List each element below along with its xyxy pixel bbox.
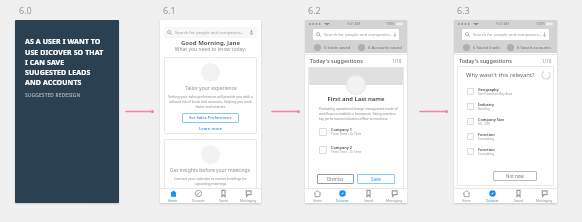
button[interactable]: Company Size xyxy=(467,114,544,129)
staticText: Discover xyxy=(486,199,499,203)
staticText: 6 Accounts saved xyxy=(368,45,402,51)
staticText: Messaging xyxy=(386,199,403,203)
button[interactable]: Geography xyxy=(467,84,544,99)
button[interactable]: Messaging xyxy=(236,189,261,203)
button[interactable]: Dismiss xyxy=(317,174,354,184)
button[interactable]: Function xyxy=(467,144,544,159)
staticText: Function xyxy=(478,147,495,152)
staticText: 9:41 AM xyxy=(496,21,510,26)
button[interactable]: Connect calendar xyxy=(182,190,239,200)
button[interactable]: Search xyxy=(164,27,257,38)
button[interactable]: Learn more xyxy=(199,126,223,132)
staticText: Get insights before your meetings xyxy=(170,167,251,174)
button[interactable]: Set Sales Preferences xyxy=(182,113,239,123)
staticText: 6 Saved leads xyxy=(473,45,500,51)
button[interactable]: Home xyxy=(454,189,479,203)
staticText: 6.3 xyxy=(457,4,470,16)
staticText: 1/10 xyxy=(542,58,552,64)
button[interactable]: Discover xyxy=(479,189,505,203)
staticText: Connect calendar xyxy=(193,192,228,198)
button[interactable]: Search xyxy=(313,29,399,40)
staticText: Setting your sales preferences will prov… xyxy=(164,94,257,109)
staticText: 1/10 xyxy=(392,58,402,64)
staticText: Saved xyxy=(514,199,523,203)
staticText: From Time - To Time xyxy=(331,132,362,136)
staticText: SUGGESTED REDESIGN xyxy=(25,92,81,99)
staticText: Company 2 xyxy=(331,145,352,150)
button[interactable]: Messaging xyxy=(381,189,407,203)
staticText: 100% xyxy=(536,21,545,26)
staticText: From Time - To Time xyxy=(331,150,362,154)
staticText: Consulting xyxy=(478,152,495,156)
staticText: Home xyxy=(168,199,178,203)
button[interactable]: Saved xyxy=(211,189,236,203)
staticText: Set Sales Preferences xyxy=(189,115,232,121)
staticText: 6 Saved accounts xyxy=(517,45,551,51)
button[interactable]: 6 Saved leads xyxy=(463,44,507,51)
staticText: Search for people and companies... xyxy=(473,32,543,38)
button[interactable]: 6 Accounts saved xyxy=(358,44,405,51)
button[interactable]: Messaging xyxy=(531,189,557,203)
staticText: Saved xyxy=(364,199,373,203)
button[interactable]: Saved xyxy=(505,189,531,203)
staticText: Company 1 xyxy=(331,127,352,132)
button[interactable]: 6 Saved accounts xyxy=(507,44,555,51)
staticText: 6.0 xyxy=(19,4,32,16)
staticText: Home xyxy=(313,199,323,203)
staticText: Industry xyxy=(478,102,495,107)
staticText: Why wasn't this relevant? xyxy=(466,71,535,79)
button[interactable]: Not now xyxy=(493,171,537,181)
staticText: Good Morning, Jane xyxy=(160,39,261,47)
button[interactable]: 6 leads saved xyxy=(314,44,358,51)
staticText: Home xyxy=(462,199,472,203)
staticText: 6 leads saved xyxy=(324,45,351,51)
staticText: Today's suggestions xyxy=(310,57,363,64)
button[interactable]: Discover xyxy=(186,189,211,203)
staticText: Not now xyxy=(506,173,524,179)
button[interactable]: Search xyxy=(462,29,549,40)
staticText: Save xyxy=(371,176,381,182)
staticText: 100% xyxy=(386,21,395,26)
staticText: Company Size xyxy=(478,117,505,122)
staticText: Function xyxy=(478,132,495,137)
staticText: San Francisco Bay Area xyxy=(478,92,513,96)
button[interactable]: Saved xyxy=(355,189,381,203)
staticText: What you need to know today: xyxy=(160,46,261,53)
staticText: Search for people and companies... xyxy=(175,30,245,36)
staticText: Tailor your experience xyxy=(185,85,237,92)
button[interactable]: Discover xyxy=(330,189,355,203)
staticText: Today's suggestions xyxy=(459,57,512,64)
staticText: First and Last name xyxy=(308,95,404,103)
staticText: Search for people and companies... xyxy=(324,32,394,38)
button[interactable]: Industry xyxy=(467,99,544,114)
staticText: Connect your calendar to receive briefin… xyxy=(164,176,257,186)
button[interactable]: Home xyxy=(160,189,186,203)
staticText: Consulting xyxy=(478,137,495,141)
staticText: Banking xyxy=(478,107,491,111)
button[interactable]: Company 1 xyxy=(319,124,393,139)
staticText: Podcasting operational change management… xyxy=(319,107,404,121)
staticText: Saved xyxy=(219,199,228,203)
staticText: AS A USER I WANT TO USE DICOVER SO THAT … xyxy=(25,37,104,87)
button[interactable]: Save xyxy=(357,174,395,184)
button[interactable]: Function xyxy=(467,129,544,144)
staticText: Dismiss xyxy=(327,176,344,182)
staticText: Messaging xyxy=(240,199,257,203)
staticText: Messaging xyxy=(536,199,553,203)
staticText: 50 - 200 xyxy=(478,122,490,126)
staticText: Geography xyxy=(478,87,499,92)
staticText: 9:41 AM xyxy=(347,21,361,26)
button[interactable]: Company 2 xyxy=(319,142,393,157)
staticText: Discover xyxy=(192,199,205,203)
staticText: 6.2 xyxy=(308,4,321,16)
button[interactable]: Home xyxy=(305,189,330,203)
staticText: Discover xyxy=(336,199,349,203)
staticText: 6.1 xyxy=(163,4,176,16)
